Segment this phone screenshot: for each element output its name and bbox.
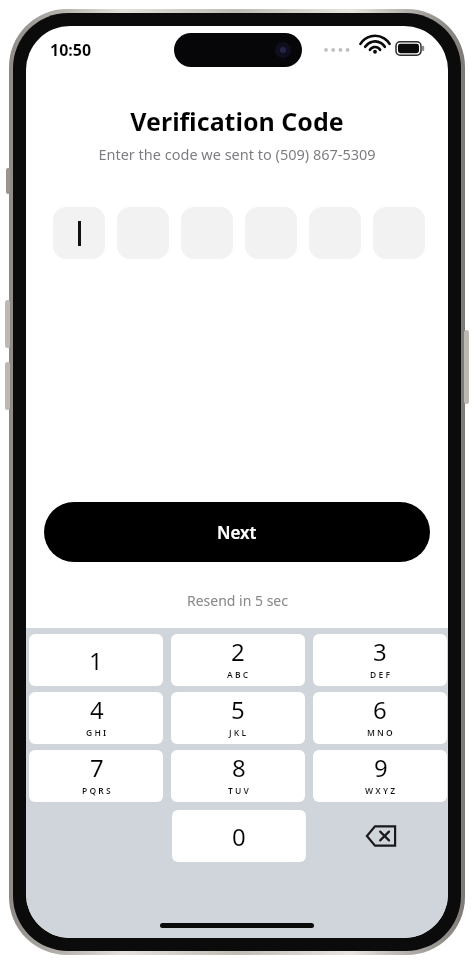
button[interactable]: 2: [171, 634, 305, 686]
staticText: 5: [231, 693, 245, 726]
staticText: 4: [90, 693, 104, 726]
staticText: 9: [374, 751, 388, 784]
staticText: 0: [232, 820, 246, 853]
button[interactable]: Next: [44, 502, 430, 562]
button[interactable]: 6: [313, 692, 447, 744]
staticText: M N O: [367, 727, 393, 739]
staticText: J K L: [229, 727, 247, 739]
button[interactable]: 3: [313, 634, 447, 686]
button[interactable]: 0: [172, 810, 306, 862]
staticText: 10:50: [50, 39, 92, 61]
staticText: Next: [217, 521, 257, 544]
staticText: 6: [373, 693, 387, 726]
staticText: Resend in 5 sec: [187, 591, 288, 610]
button[interactable]: 1: [29, 634, 163, 686]
staticText: Enter the code we sent to (509) 867-5309: [98, 144, 376, 164]
staticText: 3: [373, 635, 387, 668]
button[interactable]: 8: [171, 750, 305, 802]
staticText: 7: [90, 751, 104, 784]
button[interactable]: 7: [29, 750, 163, 802]
staticText: G H I: [86, 727, 107, 739]
staticText: 1: [89, 644, 103, 677]
button[interactable]: Resend in 5 sec: [187, 591, 288, 610]
staticText: A B C: [227, 669, 249, 681]
button[interactable]: [53, 207, 105, 259]
button[interactable]: Backspace: [314, 810, 448, 862]
button[interactable]: 5: [171, 692, 305, 744]
staticText: 2: [231, 635, 245, 668]
staticText: P Q R S: [82, 785, 111, 797]
staticText: 8: [232, 751, 246, 784]
staticText: D E F: [370, 669, 390, 681]
staticText: W X Y Z: [365, 785, 396, 797]
staticText: Verification Code: [130, 104, 344, 138]
button[interactable]: 9: [313, 750, 447, 802]
staticText: T U V: [228, 785, 249, 797]
button[interactable]: 4: [29, 692, 163, 744]
